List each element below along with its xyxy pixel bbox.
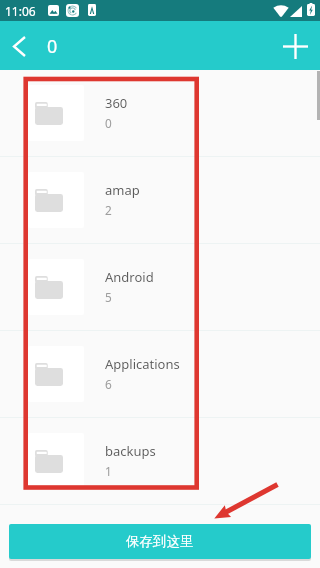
button[interactable]: 保存到这里 [9,524,311,559]
button[interactable]: Back [3,30,36,63]
staticText: 0 [47,34,58,59]
button[interactable]: Applications [0,331,320,418]
staticText: 5 [105,289,112,305]
button[interactable]: backups [0,418,320,505]
staticText: backups [105,442,156,460]
staticText: 保存到这里 [126,533,194,550]
staticText: 11:06 [5,3,36,19]
staticText: 2 [105,202,112,218]
button[interactable]: amap [0,157,320,244]
button[interactable]: Android [0,244,320,331]
staticText: 0 [105,115,112,131]
staticText: amap [105,181,140,199]
staticText: Applications [105,355,180,373]
staticText: 360 [105,94,128,112]
button[interactable]: Add [279,30,312,63]
staticText: 6 [105,376,112,392]
staticText: Android [105,268,154,286]
button[interactable]: 360 [0,70,320,157]
staticText: 1 [105,463,112,479]
